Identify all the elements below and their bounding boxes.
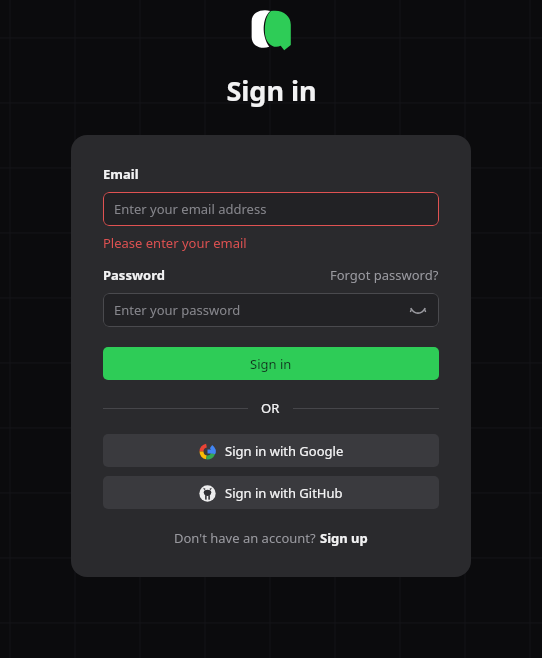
button[interactable]: Show password bbox=[408, 300, 428, 320]
staticText: Don't have an account? bbox=[174, 529, 320, 547]
staticText: Email bbox=[103, 165, 139, 183]
button[interactable]: Sign in with Google bbox=[103, 434, 439, 467]
button[interactable]: Sign up bbox=[320, 529, 368, 547]
staticText: Sign up bbox=[320, 529, 368, 547]
staticText: Please enter your email bbox=[103, 234, 247, 252]
button[interactable]: Sign in with GitHub bbox=[103, 476, 439, 509]
button[interactable]: Sign in bbox=[103, 347, 439, 380]
button[interactable]: Forgot password? bbox=[330, 266, 439, 284]
staticText: Forgot password? bbox=[330, 266, 439, 284]
other: App logo bbox=[249, 8, 293, 52]
button[interactable]: Enter your password bbox=[103, 293, 439, 327]
staticText: Sign in bbox=[250, 355, 292, 373]
staticText: Password bbox=[103, 266, 165, 284]
staticText: Sign in bbox=[226, 72, 317, 109]
staticText: OR bbox=[261, 399, 280, 417]
staticText: Enter your password bbox=[114, 301, 241, 319]
button[interactable]: Enter your email address bbox=[103, 192, 439, 226]
staticText: Sign in with Google bbox=[225, 442, 344, 460]
staticText: Sign in with GitHub bbox=[225, 484, 343, 502]
staticText: Enter your email address bbox=[114, 200, 267, 218]
